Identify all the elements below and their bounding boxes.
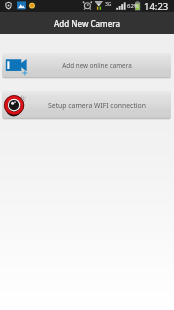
staticText: Setup camera WIFI connection xyxy=(48,101,146,110)
button[interactable]: Setup camera WIFI connection xyxy=(2,91,171,119)
staticText: Add new online camera xyxy=(62,61,132,70)
staticText: 62% xyxy=(127,2,139,10)
staticText: 14:23 xyxy=(144,0,169,12)
button[interactable]: Add new online camera xyxy=(2,53,171,78)
staticText: 3G xyxy=(105,1,112,8)
button[interactable]: Add New Camera xyxy=(0,12,174,34)
staticText: Add New Camera xyxy=(54,18,121,29)
